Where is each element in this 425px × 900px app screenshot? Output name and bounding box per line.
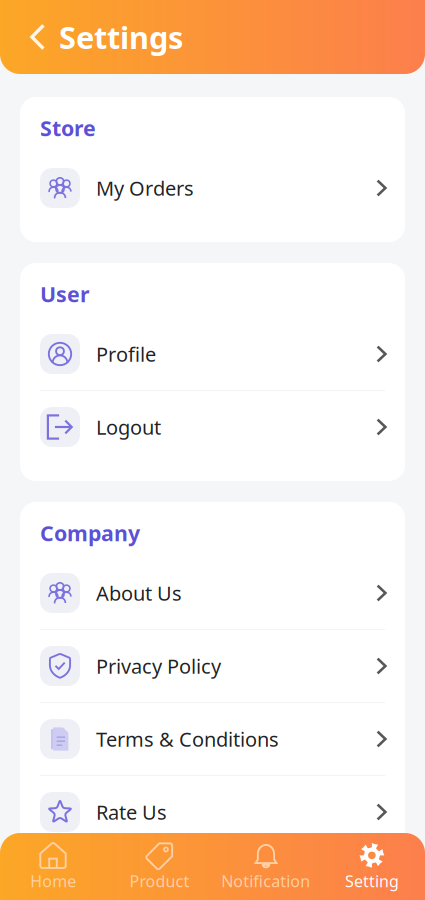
button[interactable]: Setting [319, 832, 425, 900]
staticText: Settings [59, 17, 183, 57]
staticText: Rate Us [96, 799, 167, 825]
staticText: Terms & Conditions [96, 726, 279, 752]
button[interactable]: Rate Us [20, 776, 405, 848]
button[interactable]: About Us [20, 557, 405, 629]
staticText: Setting [345, 870, 399, 892]
staticText: Company [40, 519, 140, 547]
button[interactable]: Logout [20, 391, 405, 463]
button[interactable]: Notification [212, 832, 319, 900]
button[interactable]: Product [106, 832, 212, 900]
staticText: About Us [96, 580, 182, 606]
staticText: Product [129, 870, 189, 892]
staticText: Logout [96, 414, 161, 440]
staticText: Privacy Policy [96, 653, 221, 679]
staticText: Profile [96, 341, 156, 367]
staticText: Home [30, 870, 76, 892]
button[interactable]: Profile [20, 318, 405, 390]
button[interactable]: My Orders [20, 152, 405, 224]
button[interactable]: Home [0, 832, 106, 900]
staticText: My Orders [96, 175, 194, 201]
staticText: Store [40, 114, 96, 142]
staticText: Notification [221, 870, 310, 892]
staticText: User [40, 280, 90, 308]
button[interactable]: Back [0, 9, 59, 65]
button[interactable]: Privacy Policy [20, 630, 405, 702]
button[interactable]: Terms & Conditions [20, 703, 405, 775]
